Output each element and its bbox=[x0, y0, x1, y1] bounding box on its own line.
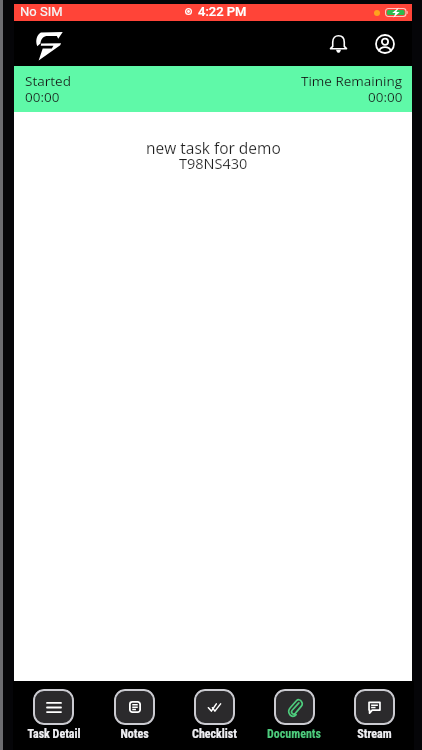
staticText: Time Remaining bbox=[301, 72, 403, 90]
staticText: Started bbox=[25, 72, 71, 90]
staticText: No SIM bbox=[20, 4, 63, 19]
staticText: Stream bbox=[357, 727, 392, 741]
button[interactable]: Home bbox=[34, 31, 64, 61]
staticText: Notes bbox=[120, 727, 149, 741]
button[interactable]: Stream bbox=[334, 681, 414, 750]
staticText: Task Detail bbox=[27, 727, 81, 741]
staticText: Checklist bbox=[192, 727, 237, 741]
button[interactable]: Documents bbox=[254, 681, 334, 750]
staticText: T98NS430 bbox=[179, 154, 248, 174]
staticText: 4:22 PM bbox=[198, 4, 247, 19]
button[interactable]: Account bbox=[368, 27, 402, 61]
staticText: 00:00 bbox=[368, 88, 403, 106]
button[interactable]: Task Detail bbox=[13, 681, 94, 750]
button[interactable]: Checklist bbox=[174, 681, 254, 750]
button[interactable]: Notes bbox=[94, 681, 174, 750]
staticText: Documents bbox=[267, 727, 321, 741]
button[interactable]: Notifications bbox=[321, 27, 355, 61]
staticText: 00:00 bbox=[25, 88, 60, 106]
staticText: new task for demo bbox=[146, 137, 281, 158]
